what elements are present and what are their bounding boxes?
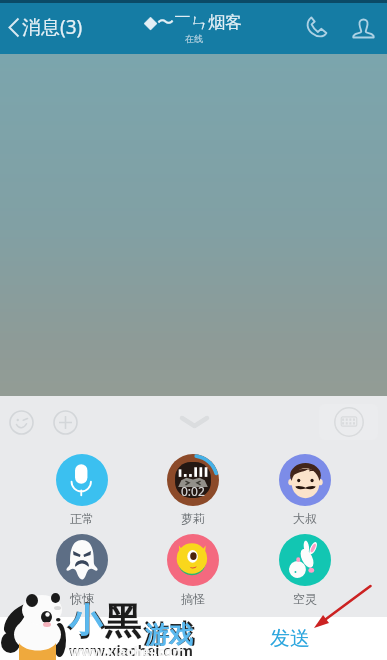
button[interactable]: 大叔	[249, 448, 361, 528]
staticText: 消息(3)	[22, 14, 83, 40]
button[interactable]: 空灵	[249, 528, 361, 608]
staticText: 游戏	[145, 620, 193, 650]
button[interactable]: Add attachment	[43, 400, 88, 445]
button[interactable]: Emoji	[0, 401, 43, 444]
staticText: 搞怪	[181, 591, 205, 606]
button[interactable]: Contact profile	[339, 0, 387, 54]
staticText: 空灵	[293, 591, 317, 606]
staticText: 0:02	[181, 483, 205, 499]
button[interactable]: 消息(3)	[0, 0, 93, 54]
button[interactable]: Switch to keyboard	[319, 404, 378, 440]
staticText: www.xiaohei.com	[69, 641, 193, 660]
staticText: 正常	[70, 511, 94, 526]
button[interactable]: 惊悚	[26, 528, 137, 608]
button[interactable]: 0:02	[137, 448, 249, 528]
staticText: 小黑	[67, 598, 141, 645]
button[interactable]: 发送	[258, 617, 322, 660]
staticText: 发送	[270, 626, 310, 651]
staticText: ◆〜￣ㄣ烟客	[144, 12, 243, 33]
staticText: 大叔	[293, 511, 317, 526]
staticText: 萝莉	[181, 511, 205, 526]
staticText: 游戏	[143, 618, 195, 651]
staticText: www.xiaohei.com	[70, 642, 186, 660]
staticText: 小	[69, 600, 102, 642]
button[interactable]: Call	[292, 0, 339, 54]
button[interactable]: 正常	[26, 448, 137, 528]
button[interactable]: Collapse panel	[164, 402, 224, 442]
button[interactable]: 搞怪	[137, 528, 249, 608]
staticText: 惊悚	[70, 591, 94, 606]
staticText: 在线	[185, 33, 203, 44]
